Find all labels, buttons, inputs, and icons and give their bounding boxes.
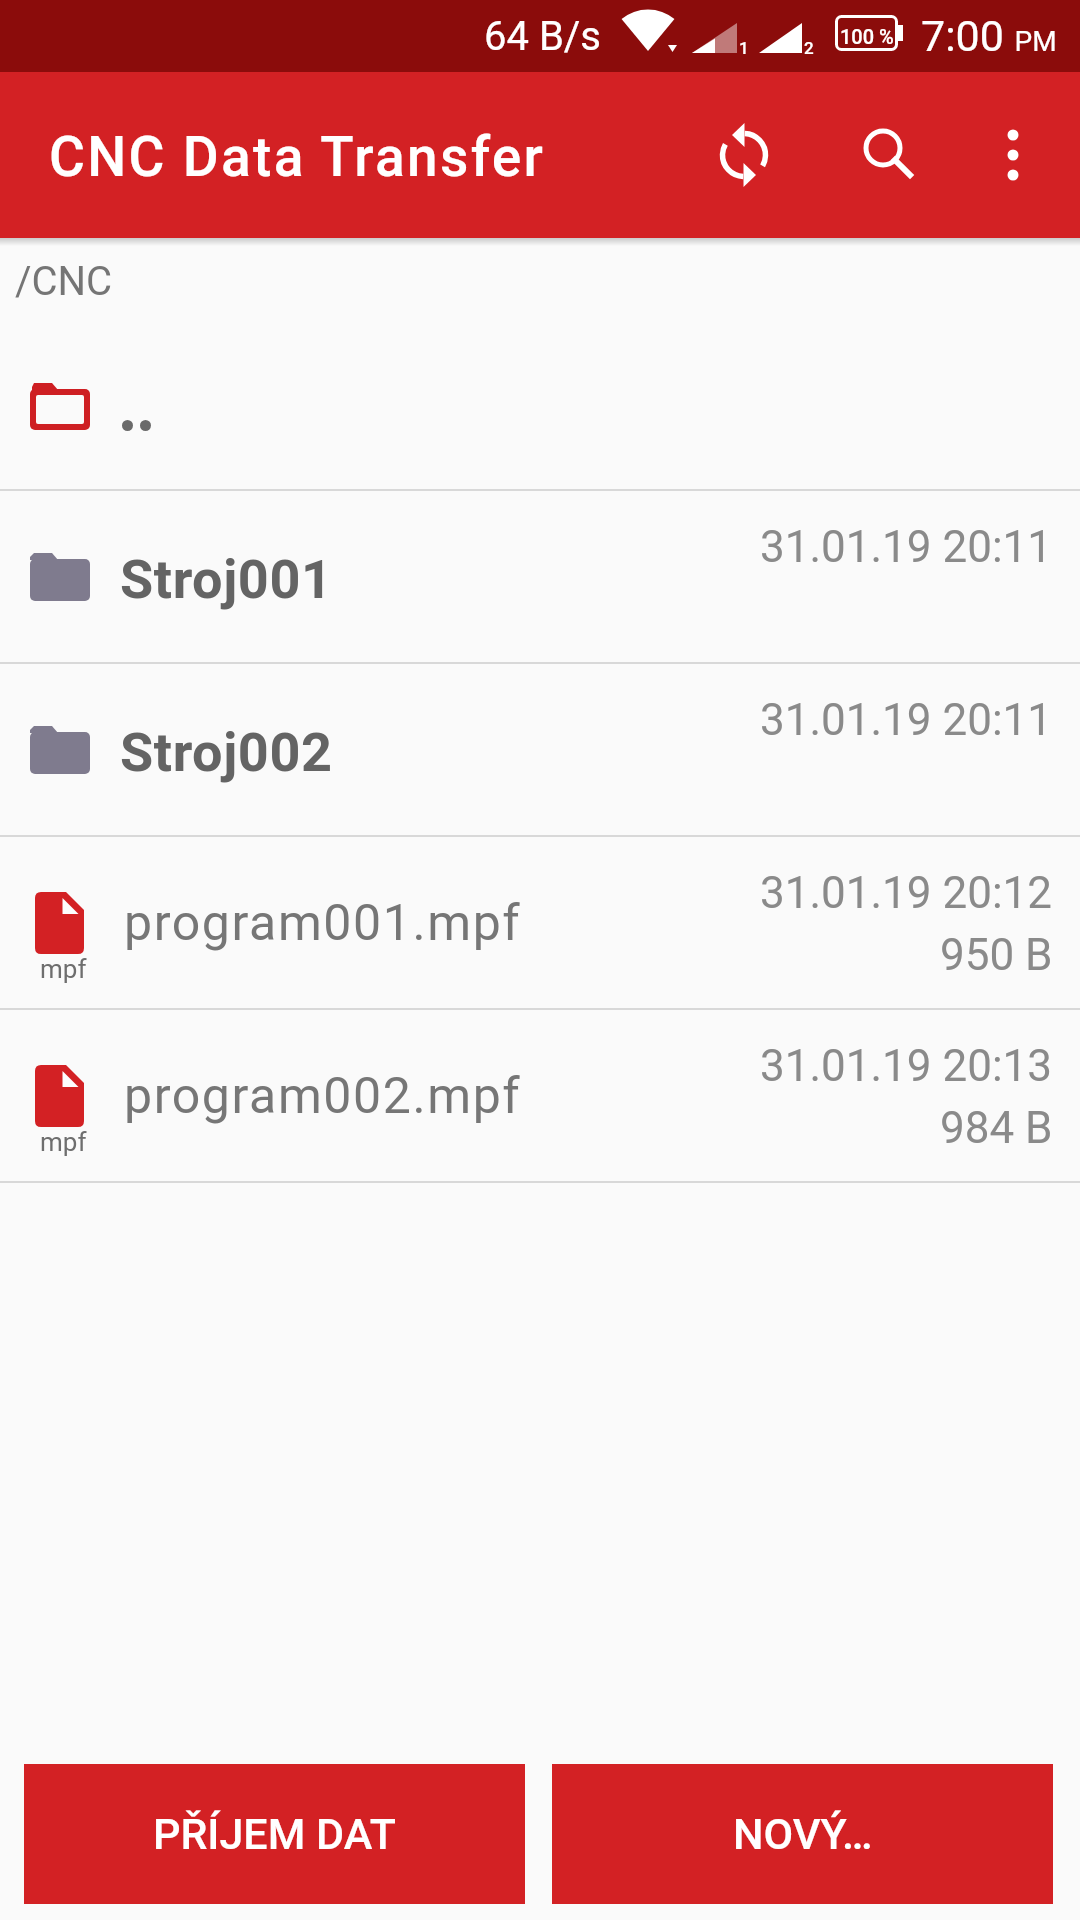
staticText: 64 B/s — [484, 13, 601, 60]
staticText: 7:00 PM — [921, 11, 1057, 61]
staticText: PŘÍJEM DAT — [153, 1809, 396, 1859]
staticText: 984 B — [940, 1102, 1053, 1154]
staticText: 100 % — [840, 25, 894, 48]
staticText: mpf — [40, 954, 87, 984]
button[interactable] — [681, 72, 807, 238]
button[interactable] — [0, 305, 1080, 489]
staticText: 1 — [739, 38, 749, 58]
button[interactable]: Stroj001 — [0, 491, 1080, 662]
staticText: NOVÝ… — [733, 1809, 873, 1859]
button[interactable]: Stroj002 — [0, 664, 1080, 835]
staticText: CNC Data Transfer — [49, 125, 546, 189]
button[interactable]: NOVÝ… — [552, 1764, 1053, 1904]
button[interactable]: mpf — [0, 837, 1080, 1008]
button[interactable] — [950, 72, 1080, 238]
staticText: mpf — [40, 1127, 87, 1157]
staticText: program002.mpf — [124, 1067, 522, 1126]
staticText: program001.mpf — [124, 894, 522, 953]
staticText: 950 B — [940, 929, 1053, 981]
staticText: 31.01.19 20:12 — [760, 867, 1053, 919]
staticText: /CNC — [15, 258, 113, 305]
staticText: Stroj001 — [120, 548, 333, 611]
button[interactable] — [823, 72, 949, 238]
button[interactable]: PŘÍJEM DAT — [24, 1764, 525, 1904]
staticText: 31.01.19 20:11 — [760, 521, 1053, 573]
staticText: 2 — [804, 38, 814, 58]
staticText: 31.01.19 20:11 — [760, 694, 1053, 746]
button[interactable]: mpf — [0, 1010, 1080, 1181]
staticText: Stroj002 — [120, 721, 333, 784]
staticText: 31.01.19 20:13 — [760, 1040, 1053, 1092]
